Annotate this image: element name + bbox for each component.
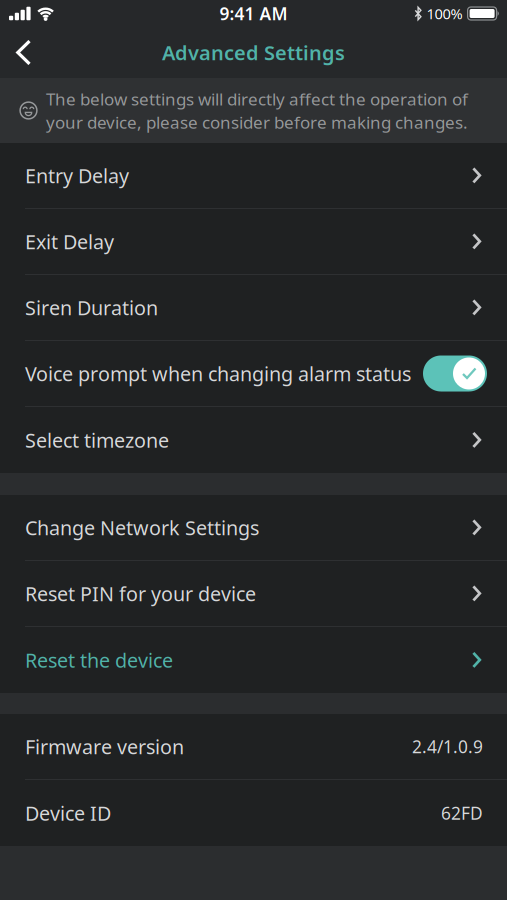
- staticText: Siren Duration: [25, 294, 158, 321]
- staticText: Exit Delay: [25, 228, 114, 255]
- button[interactable]: Reset the device: [0, 627, 507, 693]
- button[interactable]: Siren Duration: [0, 275, 507, 340]
- button[interactable]: Select timezone: [0, 407, 507, 473]
- button[interactable]: Change Network Settings: [0, 495, 507, 560]
- staticText: Entry Delay: [25, 162, 129, 189]
- staticText: The below settings will directly affect …: [46, 87, 468, 134]
- staticText: 100%: [427, 4, 463, 23]
- staticText: 62FD: [441, 801, 483, 825]
- staticText: 2.4/1.0.9: [412, 735, 483, 758]
- staticText: Reset the device: [25, 647, 173, 673]
- staticText: Select timezone: [25, 427, 169, 453]
- button[interactable]: Voice prompt when changing alarm status: [423, 355, 487, 391]
- staticText: Voice prompt when changing alarm status: [25, 360, 411, 387]
- staticText: Advanced Settings: [162, 39, 345, 66]
- staticText: Firmware version: [25, 733, 184, 760]
- button[interactable]: Entry Delay: [0, 143, 507, 208]
- button[interactable]: Exit Delay: [0, 209, 507, 274]
- button[interactable]: Back: [0, 27, 49, 78]
- staticText: 9:41 AM: [219, 2, 287, 25]
- staticText: Change Network Settings: [25, 514, 259, 541]
- staticText: Reset PIN for your device: [25, 580, 256, 607]
- staticText: Device ID: [25, 800, 111, 826]
- button[interactable]: Reset PIN for your device: [0, 561, 507, 626]
